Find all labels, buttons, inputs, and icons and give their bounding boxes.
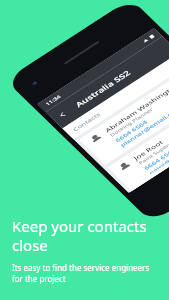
button[interactable]: Abraham Washington xyxy=(70,62,169,171)
staticText: paint@email.com xyxy=(143,137,169,175)
staticText: Australia SS2 xyxy=(69,67,137,110)
staticText: Abraham Washington xyxy=(97,80,169,135)
staticText: Contacts xyxy=(69,110,104,134)
button[interactable]: Joe Root xyxy=(99,90,169,196)
staticText: Joe Root xyxy=(129,137,167,163)
staticText: 11:34 xyxy=(43,93,63,108)
staticText: 6664 6564 xyxy=(111,118,152,145)
staticText: Keep your contacts close xyxy=(12,216,147,255)
staticText: 6664 6564 xyxy=(140,146,169,172)
staticText: planner@email.com xyxy=(114,104,169,149)
staticText: Its easy to find the service engineers f… xyxy=(12,262,150,284)
staticText: Paint Supervisor xyxy=(134,134,169,167)
staticText: Docking Planner xyxy=(105,106,158,139)
